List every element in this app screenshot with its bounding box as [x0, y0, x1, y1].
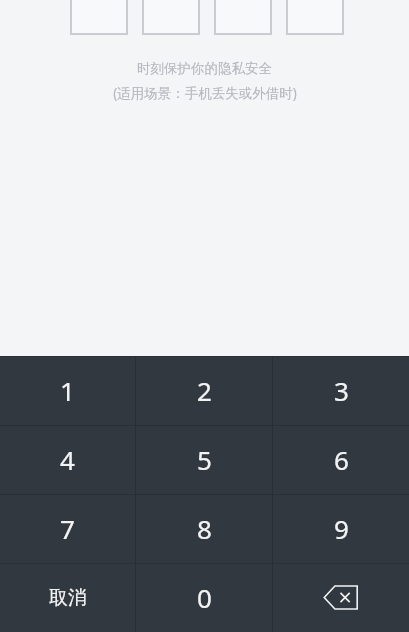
button[interactable]: 3	[273, 356, 409, 425]
staticText: 时刻保护你的隐私安全	[137, 60, 272, 77]
button[interactable]: Delete	[273, 563, 409, 632]
button[interactable]: 8	[136, 494, 272, 563]
button[interactable]: 取消	[0, 563, 135, 632]
staticText: 1	[60, 373, 75, 408]
button[interactable]: 7	[0, 494, 135, 563]
staticText: (适用场景：手机丢失或外借时)	[113, 84, 297, 102]
button[interactable]: 9	[273, 494, 409, 563]
staticText: 5	[197, 442, 212, 477]
staticText: 7	[60, 511, 75, 546]
staticText: 0	[197, 580, 212, 615]
staticText: 2	[197, 373, 212, 408]
button[interactable]: 6	[273, 425, 409, 494]
staticText: 4	[60, 442, 75, 477]
staticText: 8	[197, 511, 212, 546]
staticText: 3	[334, 373, 349, 408]
staticText: 取消	[49, 586, 87, 610]
staticText: 9	[334, 511, 349, 546]
button[interactable]: 5	[136, 425, 272, 494]
button[interactable]: 2	[136, 356, 272, 425]
button[interactable]: 0	[136, 563, 272, 632]
staticText: 6	[334, 442, 349, 477]
button[interactable]: 1	[0, 356, 135, 425]
button[interactable]: 4	[0, 425, 135, 494]
